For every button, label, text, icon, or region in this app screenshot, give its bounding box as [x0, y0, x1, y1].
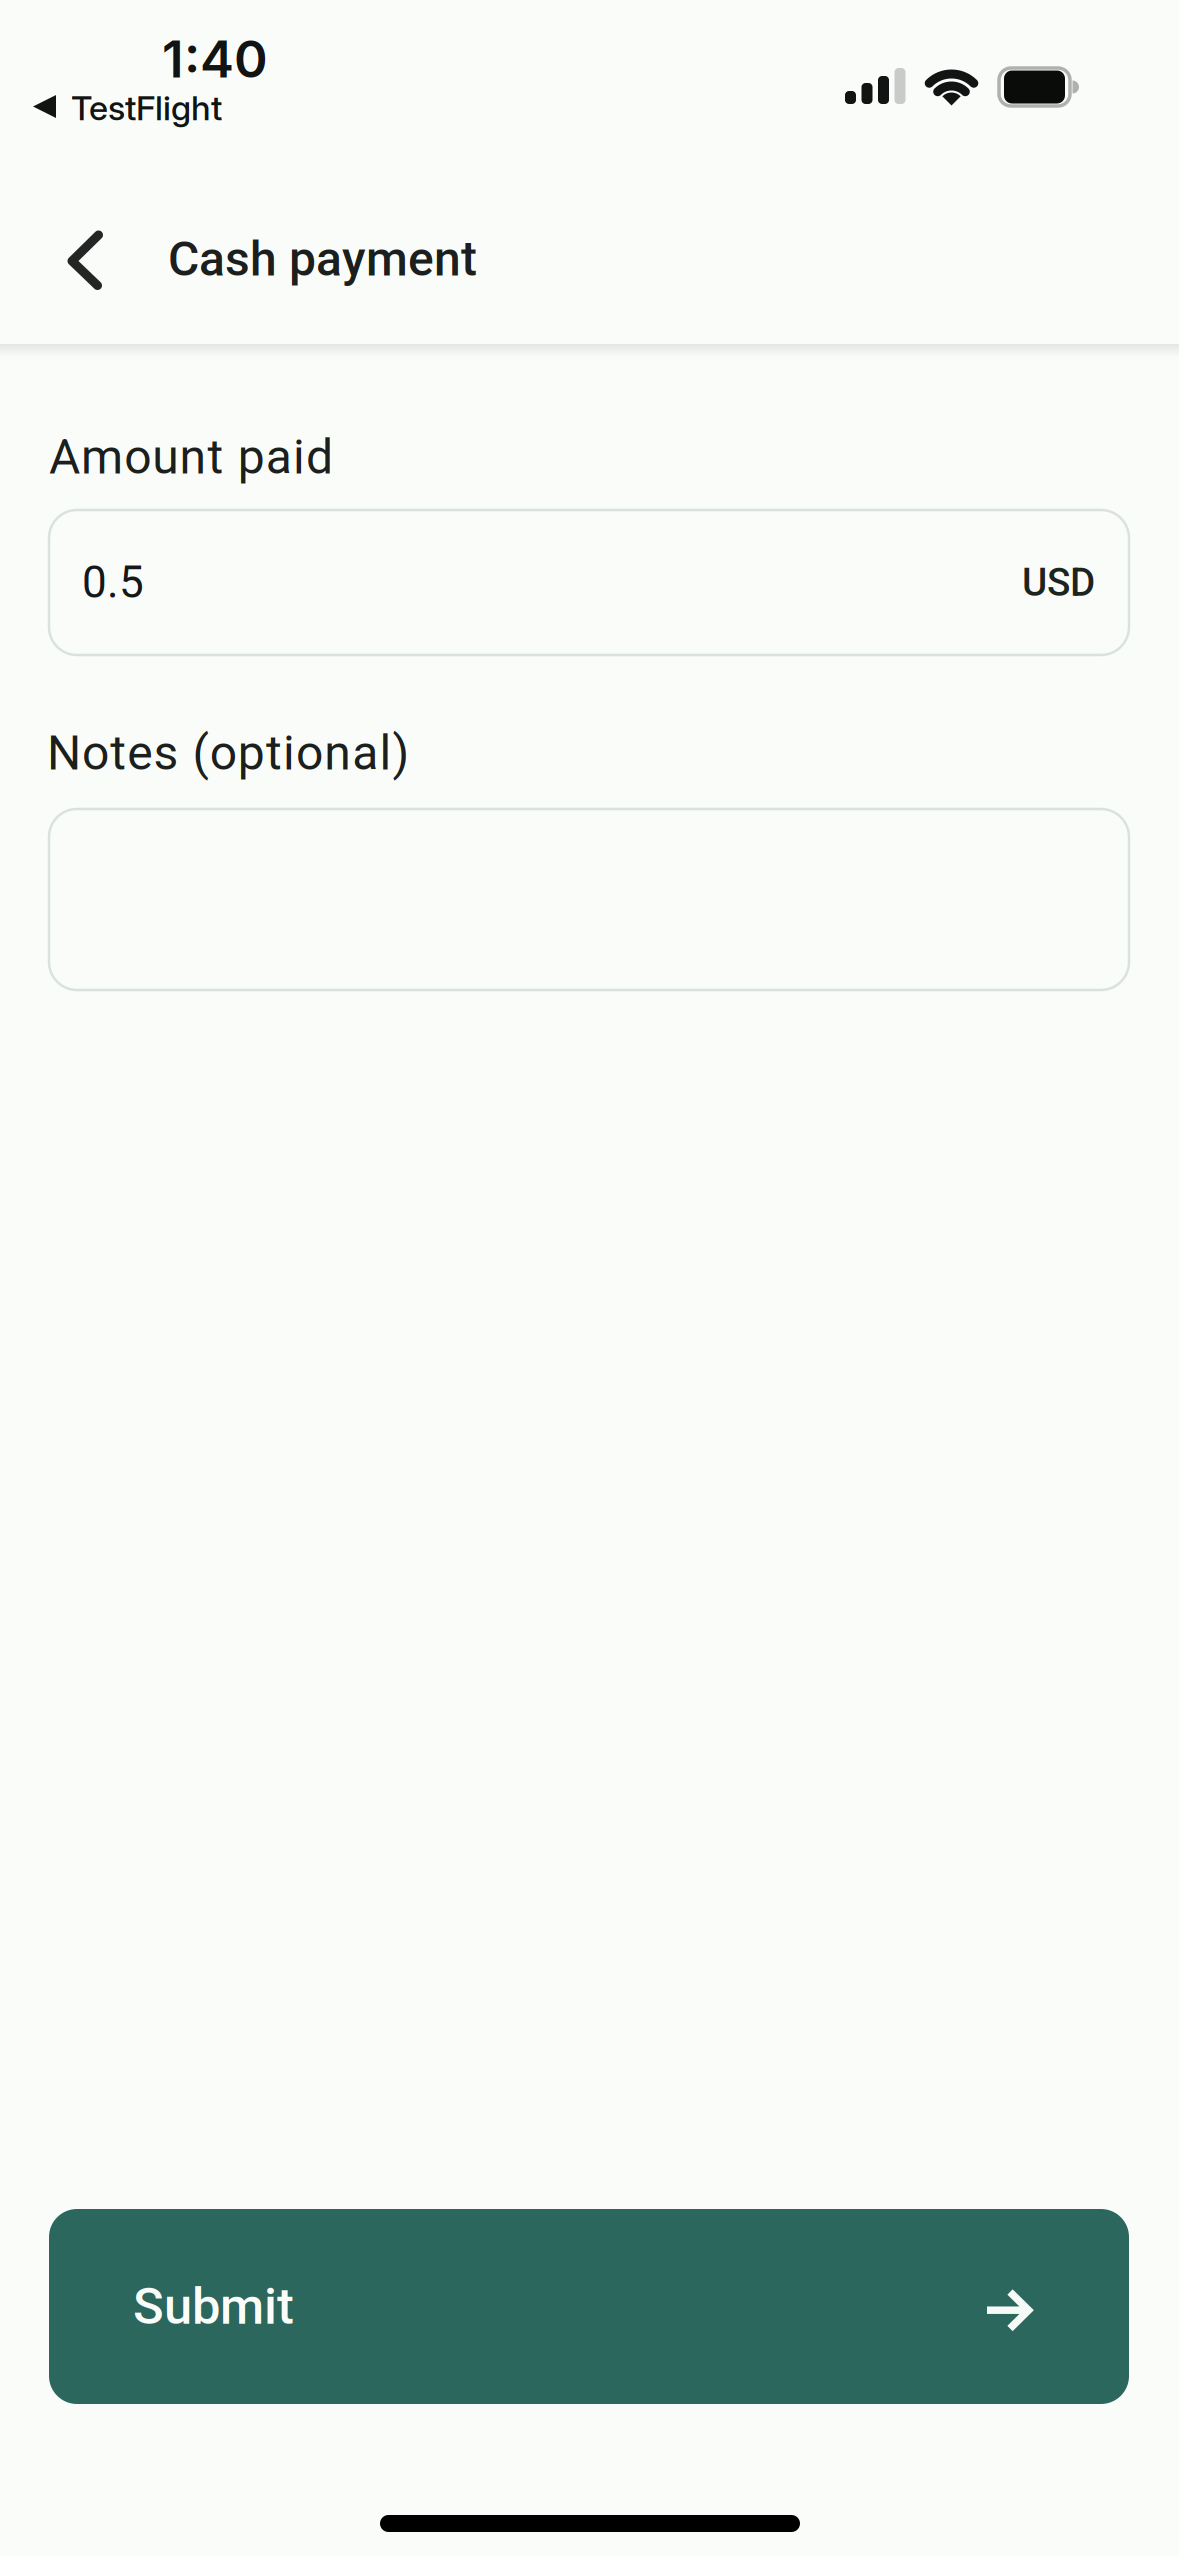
staticText: Amount paid [49, 429, 333, 485]
button[interactable]: Amount paid [49, 510, 1129, 655]
staticText: Submit [133, 2277, 294, 2336]
button[interactable]: Notes [49, 809, 1129, 990]
staticText: TestFlight [71, 87, 222, 128]
staticText: 0.5 [82, 557, 144, 608]
staticText: USD [1022, 560, 1095, 605]
button[interactable]: Submit [49, 2209, 1129, 2404]
button[interactable]: Back [44, 224, 164, 297]
staticText: Cash payment [168, 231, 477, 287]
staticText: Notes (optional) [47, 725, 409, 781]
staticText: 1:40 [162, 28, 268, 90]
